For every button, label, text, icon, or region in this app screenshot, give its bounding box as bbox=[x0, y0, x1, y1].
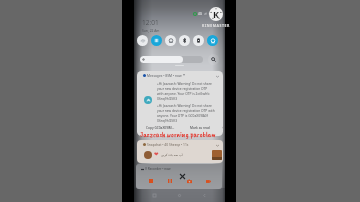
button[interactable]: Take screenshot bbox=[186, 178, 192, 184]
button[interactable]: Stop recording bbox=[148, 178, 154, 184]
staticText: +Hi Jazzcash: Warning! Do not share your… bbox=[157, 82, 223, 101]
staticText: 12:01 bbox=[142, 18, 159, 27]
staticText: KINEMASTER bbox=[196, 23, 236, 28]
staticText: Messages • 8SM • now bbox=[147, 73, 182, 77]
staticText: 4G bbox=[198, 12, 203, 16]
staticText: Snapchat • 40 Sheeqz • 11s bbox=[147, 142, 189, 146]
staticText: آپ سے بات کریں bbox=[161, 153, 183, 157]
button[interactable]: Recorder settings bbox=[205, 178, 211, 184]
staticText: Jazzcash worning paroblam bbox=[140, 130, 224, 140]
staticText: Sun, 22 Am bbox=[142, 28, 160, 32]
staticText: K bbox=[213, 8, 219, 20]
button[interactable]: Mark as read bbox=[190, 126, 210, 130]
button[interactable]: Back bbox=[200, 191, 209, 200]
button[interactable]: Auto rotate bbox=[207, 35, 218, 46]
button[interactable]: Sound bbox=[165, 35, 176, 46]
button[interactable]: Brightness bbox=[140, 56, 203, 63]
button[interactable]: Open settings bbox=[208, 54, 219, 65]
button[interactable]: Mobile data bbox=[151, 35, 162, 46]
staticText: +Hi Jazzcash: Warning! Do not share your… bbox=[157, 104, 223, 123]
staticText: ❤ bbox=[154, 151, 159, 157]
button[interactable]: Snapchat • 40 Sheeqz • 11s bbox=[137, 140, 223, 163]
button[interactable]: Messages • 8SM • now bbox=[137, 71, 223, 136]
button[interactable]: Recent apps bbox=[150, 191, 159, 200]
button[interactable]: V Recorder • now bbox=[136, 164, 222, 189]
button[interactable]: Battery saver bbox=[193, 35, 204, 46]
staticText: V Recorder • now bbox=[145, 167, 171, 171]
button[interactable]: Bluetooth bbox=[179, 35, 190, 46]
button[interactable]: Home bbox=[175, 191, 184, 200]
button[interactable]: Wi-Fi bbox=[137, 35, 148, 46]
button[interactable]: Pause recording bbox=[167, 178, 173, 184]
button[interactable]: Copy GC0aX0!8M… bbox=[146, 126, 175, 130]
